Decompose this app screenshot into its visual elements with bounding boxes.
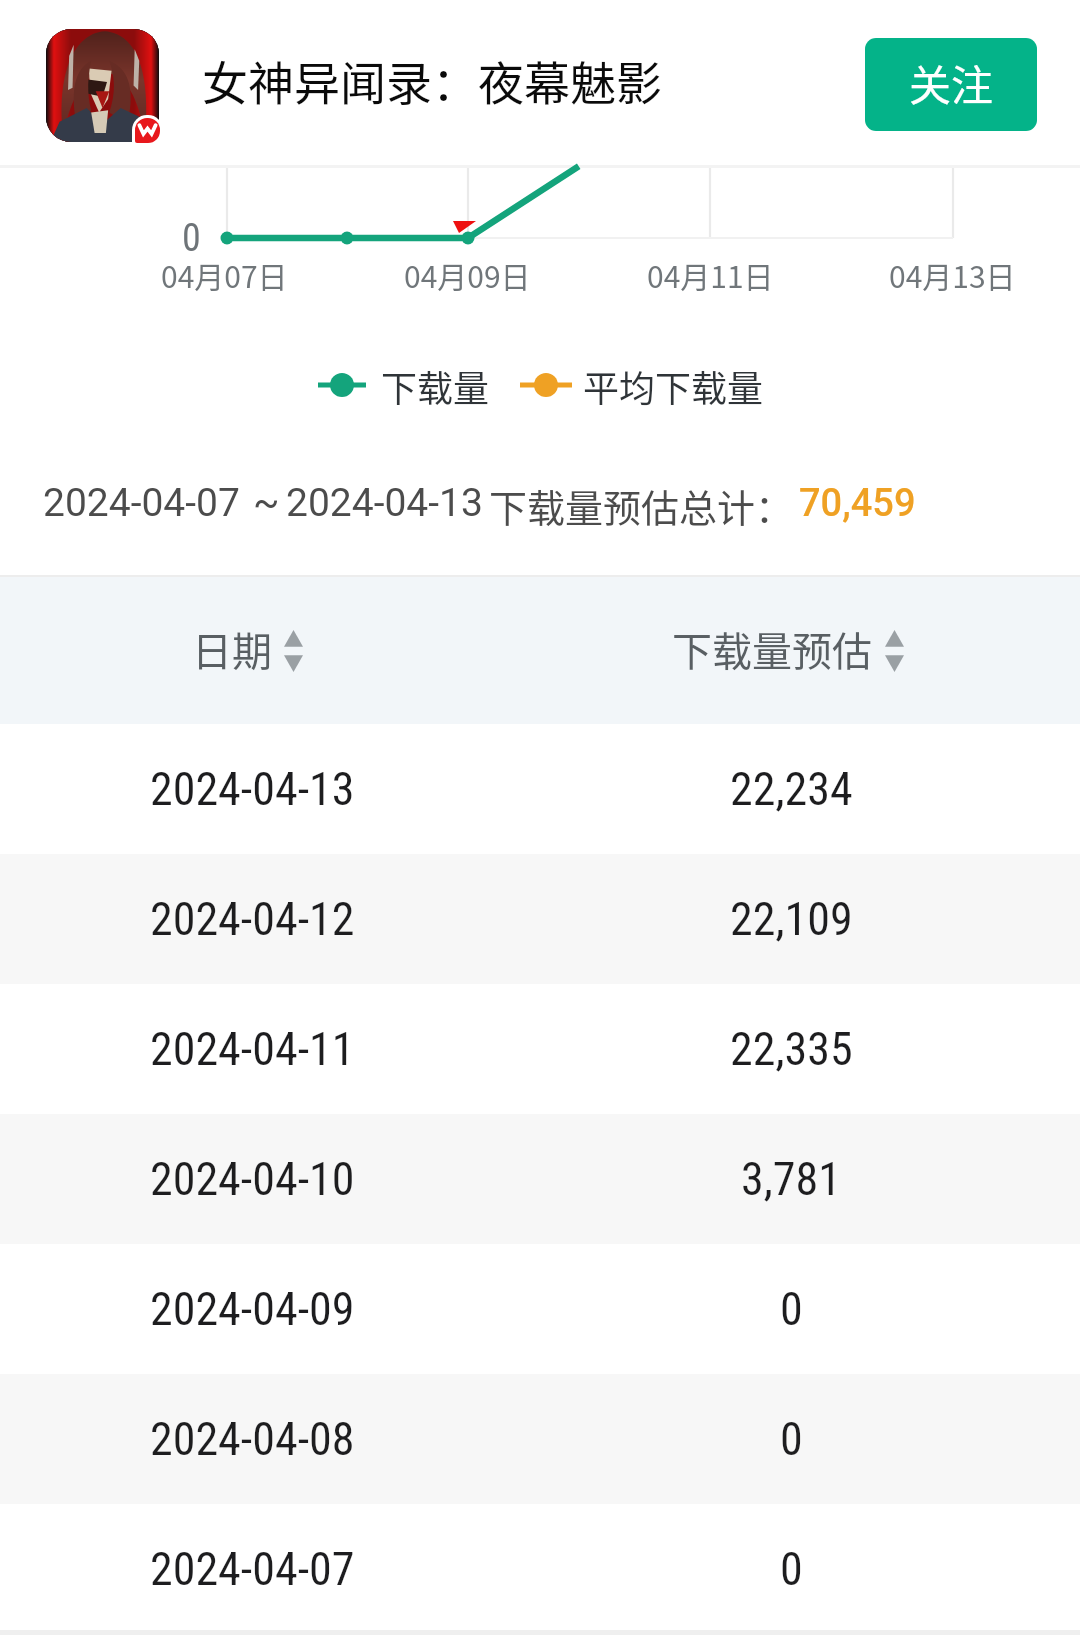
staticText: 70,459 xyxy=(799,481,916,526)
staticText: 22,335 xyxy=(730,1022,853,1076)
button[interactable]: 2024-04-12 xyxy=(0,854,1080,984)
staticText: 0 xyxy=(182,216,201,261)
staticText: 2024-04-11 xyxy=(150,1022,355,1076)
staticText: 22,234 xyxy=(730,762,853,816)
button[interactable]: 2024-04-11 xyxy=(0,984,1080,1114)
staticText: 2024-04-09 xyxy=(150,1282,355,1336)
staticText: 2024-04-07 xyxy=(150,1542,355,1596)
button[interactable]: 2024-04-08 xyxy=(0,1374,1080,1504)
staticText: 04月11日 xyxy=(647,253,774,296)
staticText: 22,109 xyxy=(730,892,853,946)
staticText: 下载量 xyxy=(381,360,490,412)
staticText: 04月09日 xyxy=(404,253,531,296)
staticText: 2024-04-08 xyxy=(150,1412,355,1466)
staticText: 2024-04-13 xyxy=(286,480,483,526)
staticText: 下载量预估总计： xyxy=(489,478,794,533)
button[interactable]: 2024-04-13 xyxy=(0,724,1080,854)
staticText: 平均下载量 xyxy=(583,360,764,412)
staticText: ~ xyxy=(253,480,280,526)
staticText: 2024-04-12 xyxy=(150,892,355,946)
staticText: 2024-04-07 xyxy=(43,480,240,526)
staticText: 0 xyxy=(780,1542,803,1596)
staticText: 日期 xyxy=(192,620,272,678)
button[interactable]: 2024-04-09 xyxy=(0,1244,1080,1374)
button[interactable]: App icon xyxy=(46,29,159,142)
button[interactable]: 2024-04-07 xyxy=(0,1504,1080,1634)
button[interactable]: 日期 xyxy=(192,575,303,723)
staticText: 2024-04-10 xyxy=(150,1152,355,1206)
staticText: 2024-04-13 xyxy=(150,762,355,816)
staticText: 0 xyxy=(780,1412,803,1466)
staticText: 女神异闻录：夜幕魅影 xyxy=(202,47,662,114)
staticText: 0 xyxy=(780,1282,803,1336)
staticText: 04月13日 xyxy=(889,253,1016,296)
staticText: 04月07日 xyxy=(161,253,288,296)
button[interactable]: 关注 xyxy=(865,38,1037,131)
button[interactable]: 下载量预估 xyxy=(672,575,904,723)
staticText: 3,781 xyxy=(741,1152,841,1206)
button[interactable]: 2024-04-10 xyxy=(0,1114,1080,1244)
staticText: 关注 xyxy=(909,52,994,113)
staticText: 下载量预估 xyxy=(672,620,872,678)
